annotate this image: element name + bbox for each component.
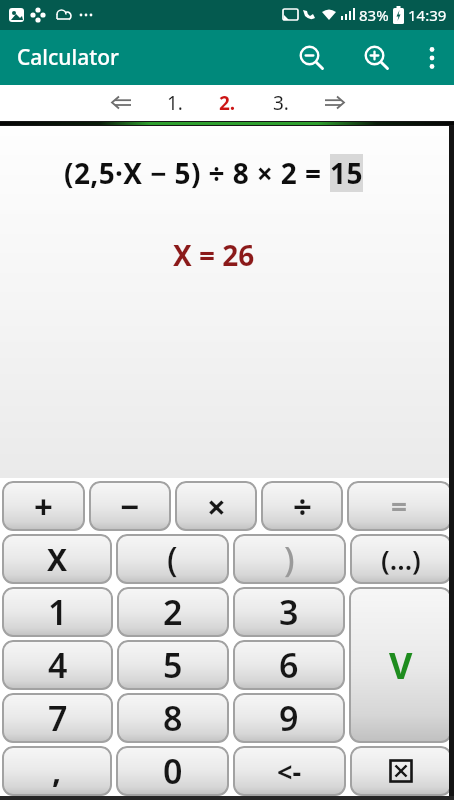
button[interactable]: = xyxy=(347,481,452,531)
staticText: 3. xyxy=(273,90,289,116)
staticText: 8 xyxy=(163,695,183,741)
button[interactable]: − xyxy=(89,481,171,531)
button[interactable]: V xyxy=(349,587,452,743)
button[interactable] xyxy=(290,36,334,80)
button[interactable] xyxy=(307,85,360,121)
staticText: 1. xyxy=(167,90,183,116)
button[interactable]: , xyxy=(2,746,112,796)
staticText: 0 xyxy=(163,748,183,794)
staticText: 83% xyxy=(359,5,389,25)
staticText: Calculator xyxy=(17,43,119,72)
staticText: ) xyxy=(284,536,295,582)
staticText: 7 xyxy=(48,695,68,741)
button[interactable]: X xyxy=(2,534,112,584)
staticText: ( xyxy=(167,536,178,582)
staticText: X = 26 xyxy=(173,236,255,274)
staticText: (2,5·X − 5) ÷ 8 × 2 = xyxy=(64,154,330,192)
button[interactable]: (...) xyxy=(350,534,452,584)
staticText: ÷ xyxy=(293,484,312,529)
button[interactable]: 4 xyxy=(2,640,113,690)
staticText: 3 xyxy=(279,589,299,635)
button[interactable]: 7 xyxy=(2,693,113,743)
staticText: 2. xyxy=(219,90,236,116)
button[interactable] xyxy=(355,36,399,80)
button[interactable] xyxy=(412,38,452,78)
button[interactable] xyxy=(95,85,148,121)
button[interactable]: 3. xyxy=(254,85,307,121)
staticText: X xyxy=(47,539,68,580)
button[interactable]: × xyxy=(175,481,257,531)
staticText: 5 xyxy=(163,642,183,688)
button[interactable]: 1 xyxy=(2,587,113,637)
staticText: (...) xyxy=(381,541,421,578)
staticText: × xyxy=(207,484,226,529)
staticText: V xyxy=(389,641,413,690)
button[interactable]: ( xyxy=(116,534,229,584)
staticText: 14:39 xyxy=(408,5,447,25)
staticText: 9 xyxy=(279,695,299,741)
button[interactable]: 2. xyxy=(201,85,254,121)
button[interactable]: 9 xyxy=(233,693,345,743)
staticText: = xyxy=(391,487,408,525)
button[interactable]: ÷ xyxy=(261,481,343,531)
button[interactable]: 8 xyxy=(117,693,229,743)
button[interactable]: 1. xyxy=(148,85,201,121)
button[interactable]: 0 xyxy=(116,746,229,796)
button[interactable]: ) xyxy=(233,534,346,584)
button[interactable]: 2 xyxy=(117,587,229,637)
staticText: 4 xyxy=(48,642,68,688)
staticText: 15 xyxy=(330,154,363,192)
button[interactable]: + xyxy=(2,481,85,531)
button[interactable]: 5 xyxy=(117,640,229,690)
staticText: <- xyxy=(277,753,302,790)
button[interactable] xyxy=(350,746,452,796)
button[interactable]: <- xyxy=(233,746,346,796)
button[interactable]: 6 xyxy=(233,640,345,690)
staticText: 1 xyxy=(48,589,68,635)
staticText: , xyxy=(52,749,62,793)
button[interactable]: 3 xyxy=(233,587,345,637)
staticText: 2 xyxy=(163,589,183,635)
staticText: − xyxy=(120,484,140,529)
staticText: + xyxy=(34,484,53,529)
staticText: 6 xyxy=(279,642,299,688)
